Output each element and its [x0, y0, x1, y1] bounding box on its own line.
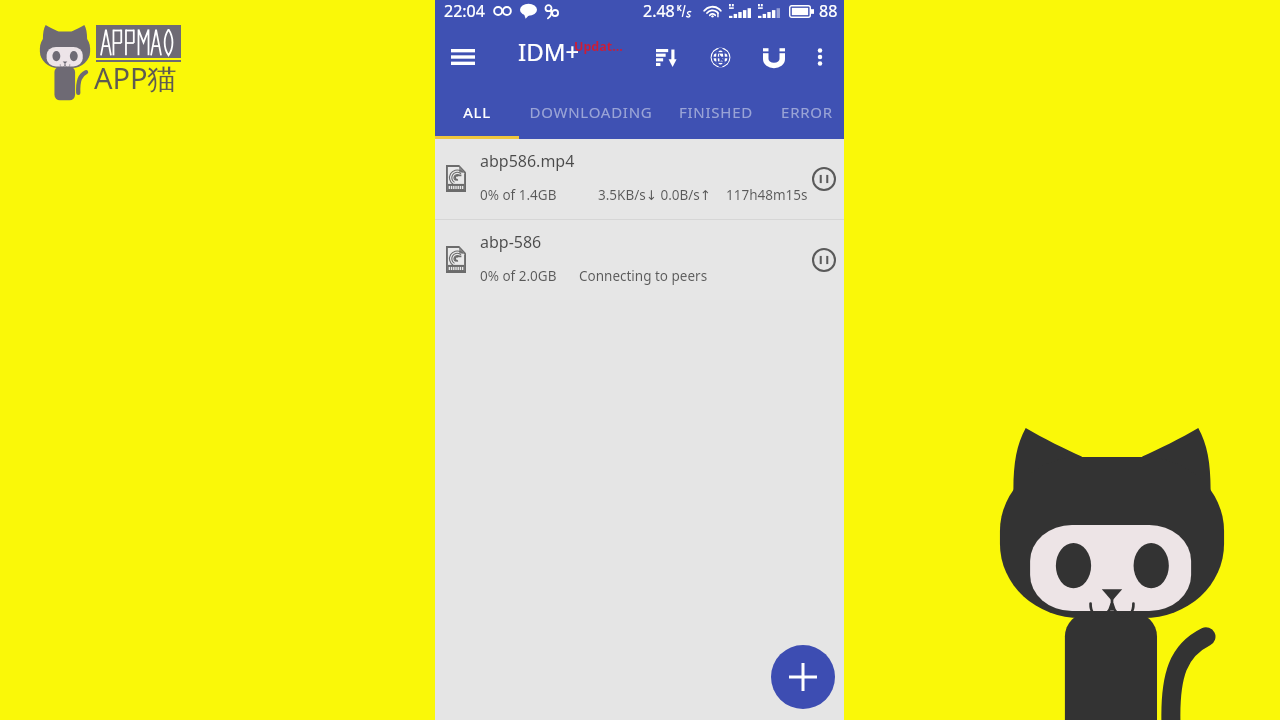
- button[interactable]: Magnet link: [750, 33, 798, 81]
- button[interactable]: Pause download: [802, 157, 846, 201]
- staticText: FINISHED: [679, 102, 753, 122]
- button[interactable]: DOWNLOADING: [519, 92, 663, 139]
- staticText: 0% of 2.0GB: [480, 267, 557, 285]
- button[interactable]: ERROR: [768, 92, 845, 139]
- staticText: 3.5KB/s↓ 0.0B/s↑: [598, 186, 712, 204]
- button[interactable]: abp586.mp4: [435, 139, 844, 219]
- staticText: Updat...: [574, 38, 623, 55]
- staticText: ERROR: [781, 102, 833, 122]
- staticText: IDM+: [518, 35, 580, 68]
- staticText: abp-586: [480, 231, 542, 253]
- staticText: 22:04: [444, 0, 485, 22]
- staticText: 88: [819, 0, 838, 22]
- staticText: DOWNLOADING: [529, 102, 653, 122]
- button[interactable]: Add new download: [771, 645, 835, 709]
- button[interactable]: abp-586: [435, 220, 844, 300]
- staticText: 0% of 1.4GB: [480, 186, 557, 204]
- button[interactable]: Pause download: [802, 238, 846, 282]
- staticText: Connecting to peers: [579, 267, 708, 285]
- button[interactable]: FINISHED: [663, 92, 768, 139]
- button[interactable]: ALL: [435, 92, 519, 139]
- button[interactable]: Browser: [696, 33, 744, 81]
- staticText: abp586.mp4: [480, 150, 575, 172]
- staticText: 2.48: [643, 0, 675, 22]
- staticText: APP猫: [94, 58, 177, 98]
- staticText: ALL: [463, 102, 491, 122]
- staticText: 117h48m15s: [726, 186, 808, 204]
- button[interactable]: Navigation menu: [435, 29, 491, 85]
- button[interactable]: Sort: [642, 33, 690, 81]
- button[interactable]: More options: [798, 35, 842, 79]
